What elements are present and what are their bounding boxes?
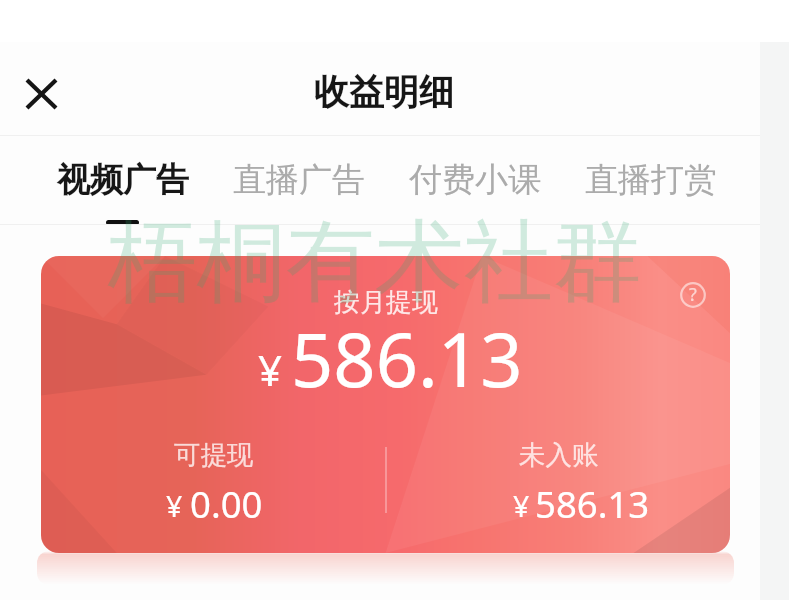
staticText: 0.00 — [190, 479, 263, 529]
staticText: 梧桐有术社群 — [108, 206, 642, 318]
staticText: 按月提现 — [334, 286, 438, 319]
staticText: 收益明细 — [314, 70, 454, 114]
staticText: 可提现 — [174, 438, 254, 471]
button[interactable]: Help — [41, 256, 730, 553]
staticText: 586.13 — [535, 479, 650, 529]
button[interactable]: Help — [675, 277, 711, 313]
staticText: 586.13 — [291, 308, 523, 409]
staticText: ? — [689, 282, 697, 307]
button[interactable]: Close — [11, 64, 71, 124]
button[interactable]: 直播打赏 — [563, 136, 739, 224]
staticText: ¥ — [513, 487, 530, 526]
staticText: 未入账 — [519, 438, 599, 471]
staticText: ¥ — [258, 341, 283, 398]
staticText: 直播广告 — [233, 159, 365, 201]
staticText: 直播打赏 — [585, 159, 717, 201]
staticText: 付费小课 — [409, 159, 541, 201]
button[interactable]: 直播广告 — [211, 136, 387, 224]
staticText: ¥ — [166, 487, 183, 526]
button[interactable]: 视频广告 — [35, 136, 211, 224]
staticText: 视频广告 — [57, 159, 189, 201]
button[interactable]: 付费小课 — [387, 136, 563, 224]
